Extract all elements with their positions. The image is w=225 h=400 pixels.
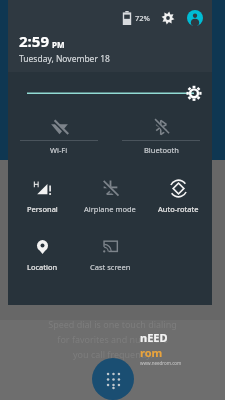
staticText: for favorites and numbers [57,333,168,345]
button[interactable]: Cast screen [76,231,144,281]
staticText: Personal [27,204,58,214]
button[interactable]: Brightness [8,72,212,113]
button[interactable]: Airplane mode [76,173,144,223]
staticText: Wi-Fi [50,145,68,155]
button[interactable]: Settings [161,11,175,25]
staticText: Tuesday, November 18 [19,53,110,65]
button[interactable]: User profile [187,10,203,26]
staticText: nEED [140,330,168,345]
staticText: rom [140,345,163,360]
button[interactable]: Dialpad [92,358,134,400]
button[interactable]: Bluetooth [110,115,212,162]
staticText: 2:59 [19,31,49,51]
staticText: Cast screen [90,262,131,272]
button[interactable]: Location [8,231,76,281]
staticText: www.needrom.com [140,360,182,366]
staticText: PM [52,39,65,50]
staticText: Bluetooth [144,145,179,155]
staticText: Airplane mode [84,204,136,214]
staticText: 72% [135,13,150,23]
button[interactable]: Personal [8,173,76,223]
button[interactable]: Wi-Fi [8,115,110,162]
staticText: you call frequently. [73,348,153,360]
other: Battery [122,11,132,25]
staticText: Speed dial is one touch dialing [48,318,177,330]
staticText: Location [27,262,58,272]
staticText: Auto-rotate [158,204,199,214]
button[interactable]: Auto-rotate [144,173,212,223]
